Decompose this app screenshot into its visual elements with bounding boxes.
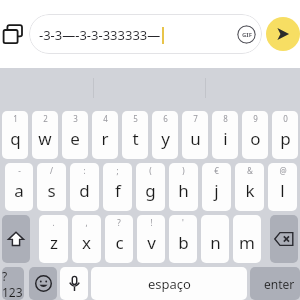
- button[interactable]: 2: [32, 111, 58, 159]
- staticText: w: [38, 127, 52, 150]
- staticText: n: [210, 231, 221, 254]
- staticText: enter: [264, 276, 295, 292]
- button[interactable]: 5: [122, 111, 148, 159]
- staticText: -3-3—-3-3-333333—: [39, 26, 161, 44]
- button[interactable]: enter: [250, 267, 300, 300]
- staticText: (: [149, 165, 152, 176]
- button[interactable]: ): [169, 163, 198, 211]
- staticText: ;: [116, 165, 119, 176]
- staticText: x: [82, 231, 91, 254]
- staticText: espaço: [148, 275, 191, 293]
- staticText: e: [70, 127, 80, 150]
- staticText: :: [83, 165, 86, 176]
- staticText: c: [115, 231, 124, 254]
- staticText: s: [47, 179, 56, 202]
- button[interactable]: Send: [266, 17, 300, 51]
- button[interactable]: -3-3—-3-3-333333—: [29, 14, 262, 54]
- staticText: f: [115, 179, 121, 202]
- button[interactable]: 4: [92, 111, 118, 159]
- staticText: .: [52, 217, 55, 228]
- staticText: @: [279, 165, 287, 176]
- staticText: i: [223, 127, 228, 150]
- staticText: l: [280, 179, 285, 202]
- staticText: ): [182, 165, 185, 176]
- staticText: z: [50, 231, 58, 254]
- staticText: h: [178, 179, 189, 202]
- button[interactable]: ,: [72, 215, 101, 263]
- staticText: j: [214, 179, 219, 202]
- button[interactable]: 7: [182, 111, 208, 159]
- staticText: o: [250, 127, 261, 150]
- button[interactable]: Emoji: [29, 267, 57, 300]
- staticText: ?: [117, 217, 121, 228]
- staticText: m: [239, 231, 255, 254]
- button[interactable]: ': [169, 215, 197, 263]
- staticText: 1: [13, 113, 18, 124]
- button[interactable]: GIF: [237, 25, 256, 44]
- button[interactable]: ?123: [2, 267, 24, 300]
- button[interactable]: 0: [272, 111, 298, 159]
- button[interactable]: 6: [152, 111, 178, 159]
- button[interactable]: 8: [212, 111, 238, 159]
- staticText: /: [50, 165, 53, 176]
- button[interactable]: €: [202, 163, 231, 211]
- staticText: u: [190, 127, 201, 150]
- staticText: 5: [133, 113, 138, 124]
- staticText: 8: [223, 113, 228, 124]
- button[interactable]: &: [235, 163, 264, 211]
- staticText: ,: [85, 217, 88, 228]
- staticText: !: [150, 217, 153, 228]
- staticText: 4: [103, 113, 108, 124]
- staticText: q: [10, 127, 21, 150]
- staticText: ?123: [2, 268, 24, 300]
- staticText: &: [247, 165, 253, 176]
- button[interactable]: ?: [105, 215, 133, 263]
- staticText: €: [214, 165, 219, 176]
- button[interactable]: Backspace: [270, 215, 298, 263]
- staticText: y: [161, 127, 170, 150]
- staticText: 0: [283, 113, 288, 124]
- button[interactable]: !: [137, 215, 165, 263]
- button[interactable]: ;: [103, 163, 132, 211]
- button[interactable]: m: [233, 215, 261, 263]
- staticText: a: [14, 179, 24, 202]
- staticText: r: [101, 127, 109, 150]
- button[interactable]: 3: [62, 111, 88, 159]
- button[interactable]: 9: [242, 111, 268, 159]
- staticText: 9: [253, 113, 258, 124]
- button[interactable]: .: [39, 215, 68, 263]
- staticText: d: [79, 179, 90, 202]
- button[interactable]: Voice input: [60, 267, 88, 300]
- staticText: ': [182, 217, 184, 228]
- staticText: 3: [73, 113, 78, 124]
- staticText: t: [132, 127, 139, 150]
- button[interactable]: espaço: [91, 267, 247, 300]
- button[interactable]: (: [136, 163, 165, 211]
- staticText: v: [147, 231, 156, 254]
- staticText: 2: [43, 113, 48, 124]
- staticText: GIF: [242, 31, 252, 39]
- staticText: g: [145, 179, 156, 202]
- staticText: -: [18, 165, 21, 176]
- staticText: b: [178, 231, 189, 254]
- button[interactable]: -: [5, 163, 33, 211]
- button[interactable]: :: [70, 163, 99, 211]
- staticText: 6: [163, 113, 168, 124]
- button[interactable]: 1: [2, 111, 28, 159]
- button[interactable]: @: [268, 163, 297, 211]
- button[interactable]: /: [37, 163, 66, 211]
- button[interactable]: n: [201, 215, 229, 263]
- button[interactable]: Camera: [0, 14, 26, 54]
- staticText: p: [280, 127, 291, 150]
- staticText: 7: [193, 113, 198, 124]
- staticText: k: [245, 179, 255, 202]
- button[interactable]: Shift: [2, 215, 30, 263]
